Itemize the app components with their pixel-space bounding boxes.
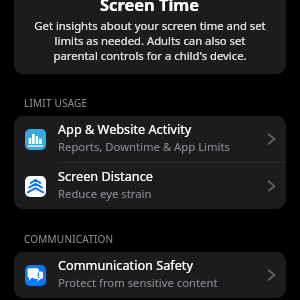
button[interactable]: Communication Safety [14, 252, 286, 298]
staticText: Screen Distance [58, 167, 153, 184]
staticText: Reports, Downtime & App Limits [58, 139, 230, 154]
staticText: App & Website Activity [58, 120, 192, 137]
button[interactable]: Screen Distance [14, 163, 286, 209]
staticText: Communication Safety [58, 256, 193, 273]
staticText: Screen Time [100, 0, 200, 15]
button[interactable]: App & Website Activity [14, 116, 286, 162]
staticText: Reduce eye strain [58, 186, 152, 201]
staticText: Get insights about your screen time and … [33, 18, 267, 63]
staticText: Protect from sensitive content [58, 275, 218, 290]
staticText: LIMIT USAGE [24, 96, 88, 109]
staticText: COMMUNICATION [24, 232, 114, 245]
